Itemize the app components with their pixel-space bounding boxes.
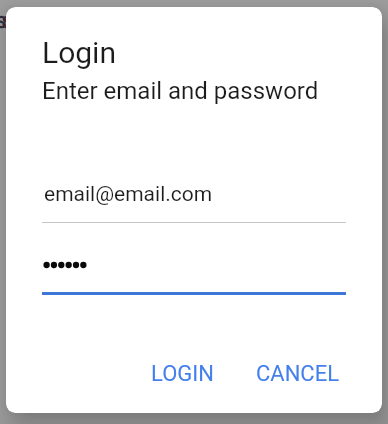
button[interactable]: LOGIN	[135, 349, 229, 399]
button[interactable]: CANCEL	[250, 349, 345, 399]
staticText: S	[2, 12, 13, 32]
button[interactable]	[42, 250, 346, 295]
staticText: LOGIN	[151, 361, 214, 387]
staticText: Enter email and password	[42, 77, 319, 105]
staticText: S	[0, 12, 7, 32]
staticText: CANCEL	[256, 361, 340, 387]
staticText: email@email.com	[44, 182, 213, 207]
button[interactable]: email@email.com	[42, 170, 346, 223]
staticText: Login	[42, 35, 116, 70]
